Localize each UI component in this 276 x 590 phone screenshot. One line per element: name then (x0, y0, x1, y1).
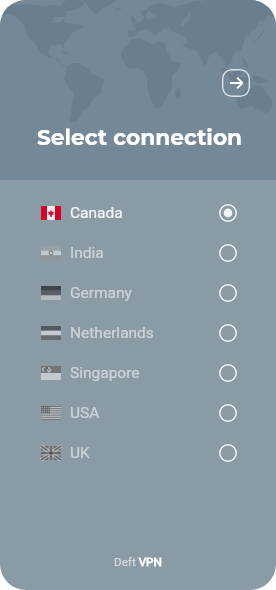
button[interactable]: Singapore (0, 353, 276, 393)
button[interactable]: Canada (0, 193, 276, 233)
button[interactable]: India (0, 233, 276, 273)
staticText: India (70, 244, 104, 262)
staticText: Netherlands (70, 324, 154, 342)
button[interactable]: UK (0, 433, 276, 473)
staticText: Germany (70, 284, 132, 302)
button[interactable]: Germany (0, 273, 276, 313)
button[interactable]: Continue (222, 69, 250, 97)
staticText: Deft VPN (114, 555, 162, 569)
staticText: USA (70, 404, 100, 422)
staticText: UK (70, 444, 90, 462)
button[interactable]: Netherlands (0, 313, 276, 353)
button[interactable]: USA (0, 393, 276, 433)
staticText: Select connection (37, 124, 243, 150)
staticText: Singapore (70, 364, 140, 382)
staticText: Canada (70, 204, 123, 222)
